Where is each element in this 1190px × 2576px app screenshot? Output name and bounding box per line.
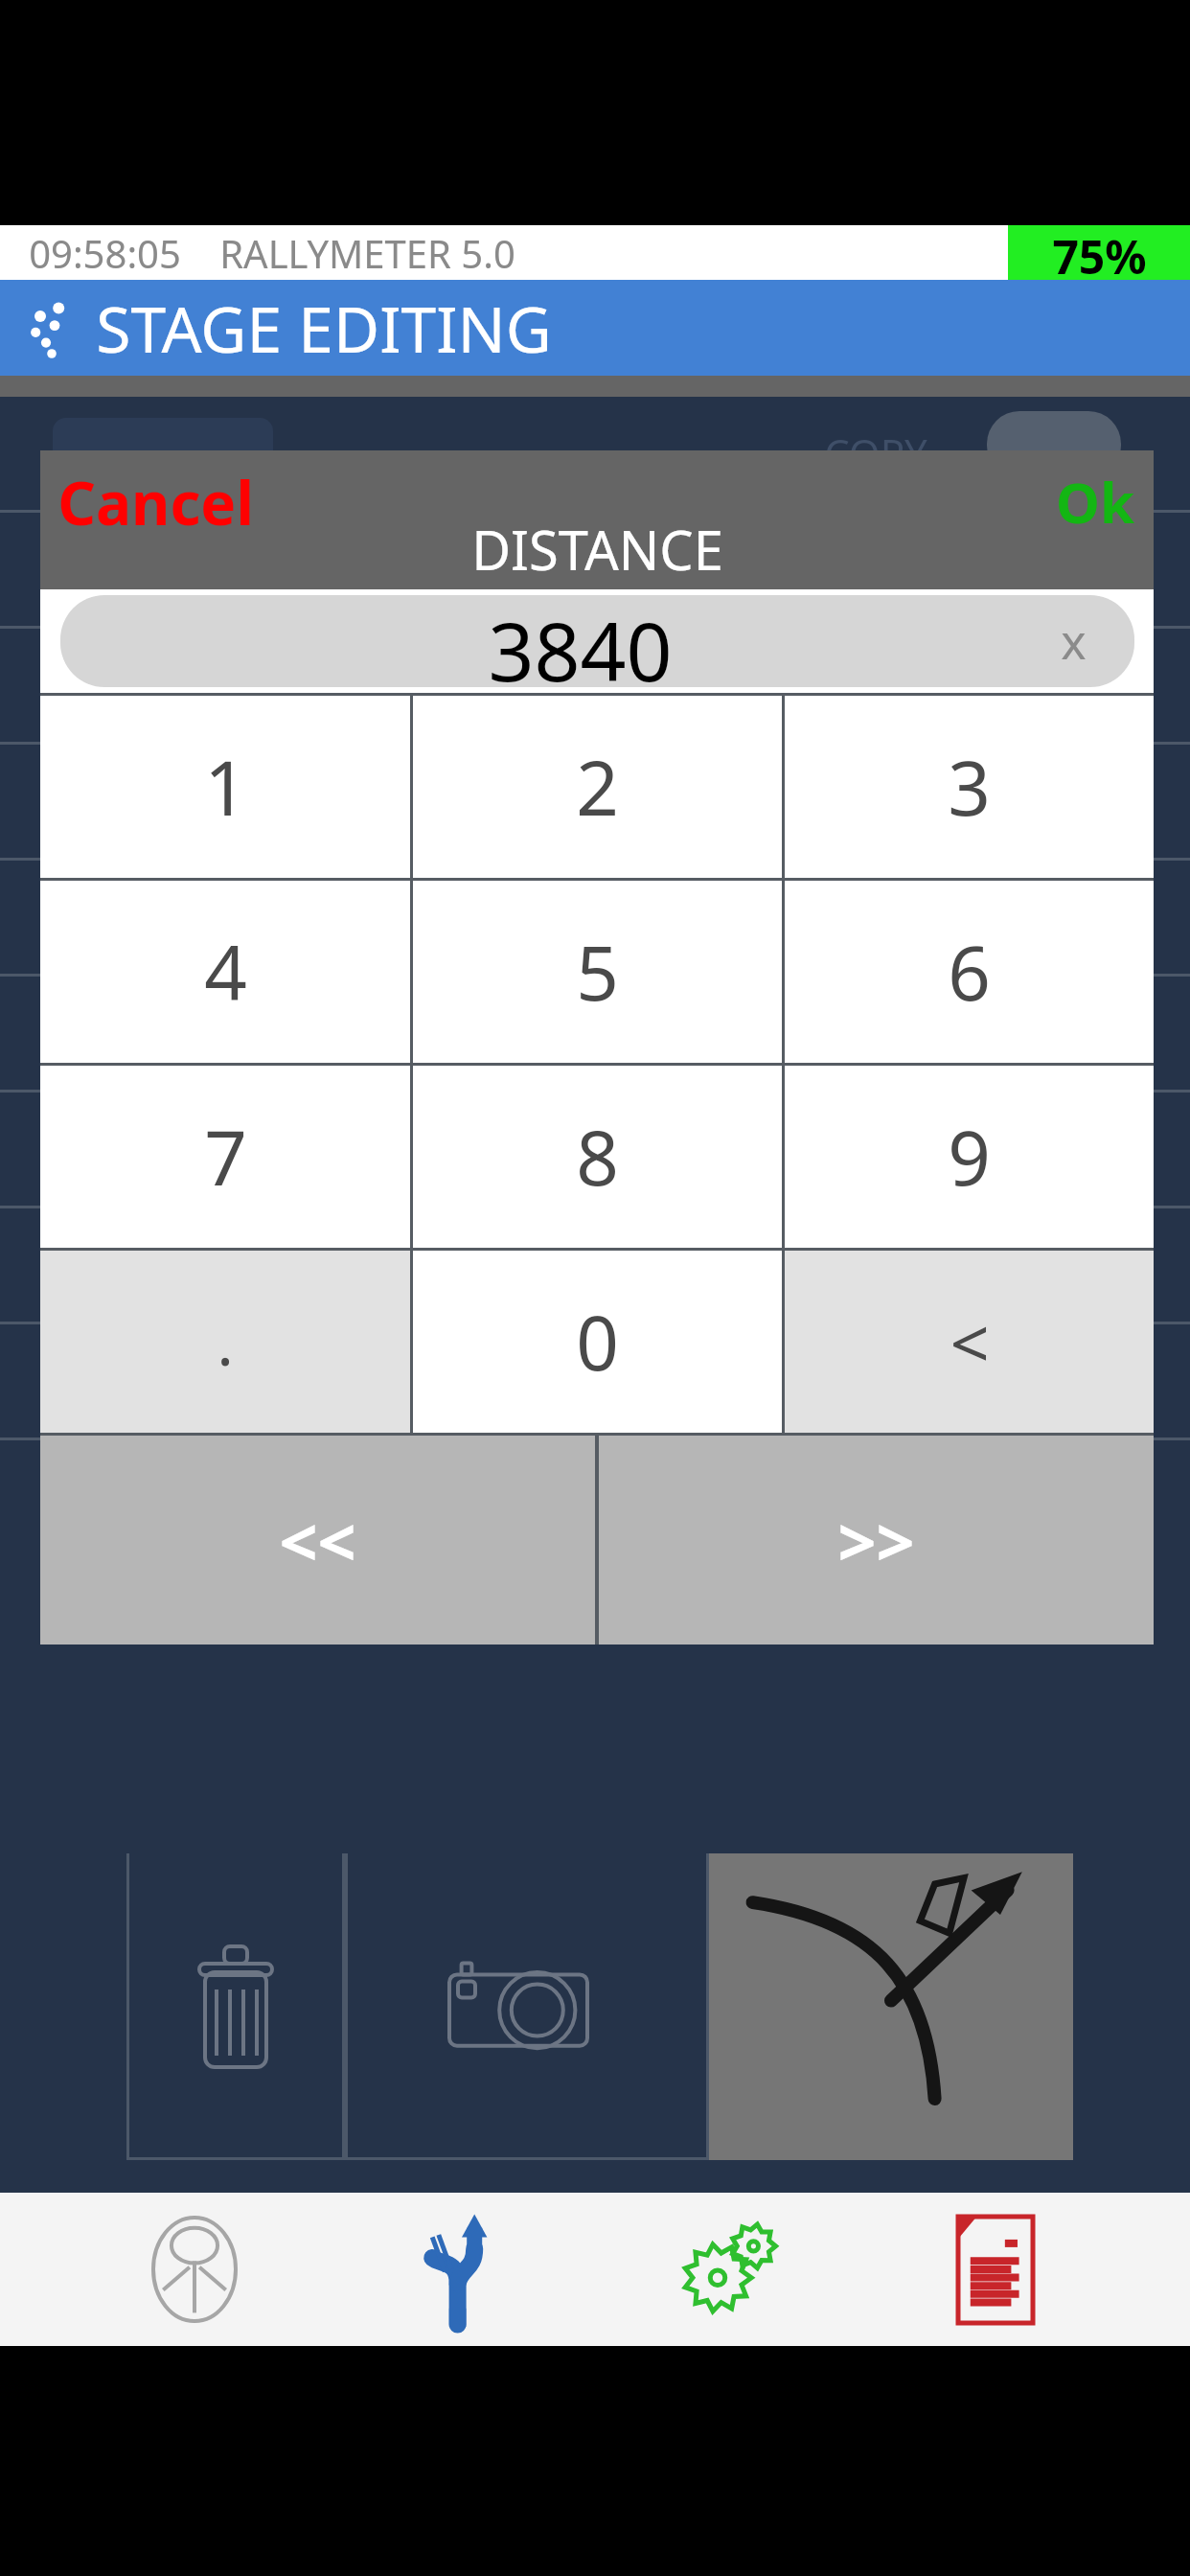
button[interactable]: Camera: [345, 1853, 709, 2160]
other: Delete: [188, 1935, 284, 2079]
staticText: 4: [204, 921, 247, 1023]
button[interactable]: Ok: [1050, 462, 1140, 541]
button[interactable]: 4: [40, 881, 410, 1063]
staticText: 6: [948, 921, 991, 1023]
button[interactable]: <: [785, 1251, 1154, 1433]
staticText: 3: [948, 736, 991, 838]
staticText: COPY: [824, 425, 927, 480]
staticText: 5: [576, 921, 619, 1023]
staticText: 1: [204, 736, 247, 838]
button[interactable]: 0: [413, 1251, 782, 1433]
button[interactable]: Next: [599, 1436, 1154, 1644]
button[interactable]: [709, 1853, 1073, 2160]
button[interactable]: 6: [785, 881, 1154, 1063]
button[interactable]: 2: [413, 696, 782, 878]
staticText: 8: [576, 1106, 619, 1207]
button[interactable]: 9: [785, 1066, 1154, 1248]
staticText: 0: [576, 1291, 619, 1392]
button[interactable]: 8: [413, 1066, 782, 1248]
staticText: x: [1061, 609, 1087, 674]
other: Camera: [441, 1949, 613, 2064]
staticText: Ok: [1056, 464, 1134, 540]
button[interactable]: 7: [40, 1066, 410, 1248]
staticText: 7: [204, 1106, 247, 1207]
button[interactable]: Route: [390, 2197, 534, 2341]
staticText: >>: [837, 1495, 915, 1586]
staticText: STAGE EDITING: [96, 285, 552, 371]
button[interactable]: 1: [40, 696, 410, 878]
button[interactable]: Settings: [656, 2197, 800, 2341]
button[interactable]: Cancel: [52, 460, 260, 544]
staticText: <: [950, 1295, 990, 1389]
staticText: 3840: [488, 595, 673, 687]
staticText: 75%: [1052, 225, 1147, 280]
staticText: 9: [948, 1106, 991, 1207]
staticText: RALLYMETER 5.0: [219, 227, 515, 279]
button[interactable]: [987, 411, 1121, 478]
button[interactable]: 5: [413, 881, 782, 1063]
staticText: DISTANCE: [471, 513, 723, 586]
staticText: 09:58:05: [29, 227, 181, 279]
button[interactable]: 3: [785, 696, 1154, 878]
button[interactable]: Delete: [126, 1853, 345, 2160]
staticText: 2: [576, 736, 619, 838]
button[interactable]: Report: [924, 2197, 1067, 2341]
button[interactable]: Previous: [40, 1436, 595, 1644]
button[interactable]: Drive: [123, 2197, 266, 2341]
button[interactable]: [53, 418, 273, 477]
staticText: .: [217, 1300, 234, 1384]
staticText: Cancel: [57, 462, 254, 542]
button[interactable]: 3840: [60, 595, 1134, 687]
button[interactable]: .: [40, 1251, 410, 1433]
staticText: <<: [279, 1495, 356, 1586]
